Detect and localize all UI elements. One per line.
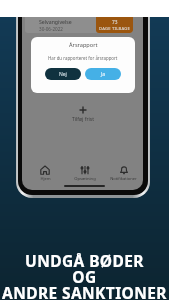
staticText: Notifikationer: [110, 176, 137, 182]
button[interactable]: Hjem: [25, 165, 65, 182]
staticText: DAGE TILBAGE: [99, 26, 131, 32]
staticText: Opsætning: [74, 176, 96, 182]
other: Hjem: [40, 165, 50, 175]
other: Notifikationer: [119, 165, 129, 175]
staticText: Ja: [101, 71, 106, 78]
staticText: Nej: [59, 71, 67, 78]
staticText: 30-06-2022: [39, 26, 63, 32]
button[interactable]: Notifikationer: [104, 165, 143, 182]
button[interactable]: Opsætning: [65, 165, 104, 182]
other: Tilføj frist: [79, 106, 87, 114]
staticText: Selvangivelse: [39, 18, 72, 25]
staticText: Tilføj frist: [72, 116, 94, 123]
staticText: UNDGÅ BØDER OG ANDRE SANKTIONER: [0, 250, 169, 300]
button[interactable]: Nej: [45, 68, 81, 80]
button[interactable]: Tilføj frist: [22, 106, 143, 123]
staticText: Årsrapport: [69, 41, 98, 49]
staticText: Hjem: [40, 176, 51, 182]
other: Opsætning: [80, 165, 90, 175]
staticText: Har du rapporteret for årsrapport: [48, 55, 118, 61]
button[interactable]: Ja: [85, 68, 121, 80]
staticText: 73: [112, 19, 118, 26]
